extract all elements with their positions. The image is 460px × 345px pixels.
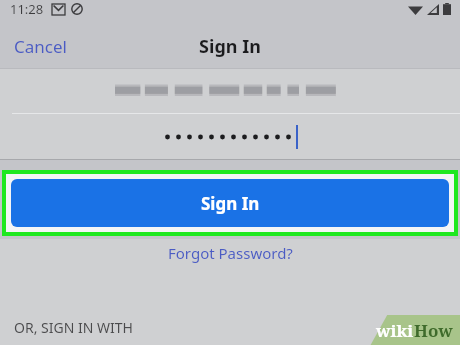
staticText: How (414, 319, 453, 342)
button[interactable]: Sign In (11, 179, 449, 227)
staticText: OR, SIGN IN WITH (14, 318, 133, 337)
staticText: Sign In (201, 192, 260, 215)
button[interactable]: Forgot Password? (158, 240, 303, 266)
staticText: Cancel (14, 35, 67, 58)
staticText: Sign In (199, 34, 261, 59)
staticText: 11:28 (10, 0, 44, 18)
button[interactable]: Cancel (0, 27, 81, 66)
staticText: wiki (376, 319, 414, 342)
button[interactable] (0, 114, 460, 159)
staticText: Forgot Password? (168, 243, 293, 263)
